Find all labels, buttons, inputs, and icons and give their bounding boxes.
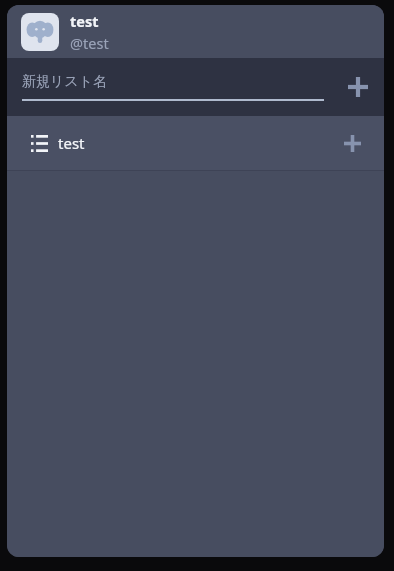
staticText: @test [70, 33, 109, 53]
staticText: test [70, 11, 99, 31]
staticText: 新規リスト名 [22, 73, 107, 91]
button[interactable]: Add to list [326, 117, 378, 169]
staticText: test [58, 133, 85, 153]
button[interactable]: test [7, 116, 384, 170]
button[interactable]: Add list [332, 61, 384, 113]
button[interactable]: test [7, 5, 384, 58]
button[interactable]: 新規リスト名 [22, 73, 324, 101]
